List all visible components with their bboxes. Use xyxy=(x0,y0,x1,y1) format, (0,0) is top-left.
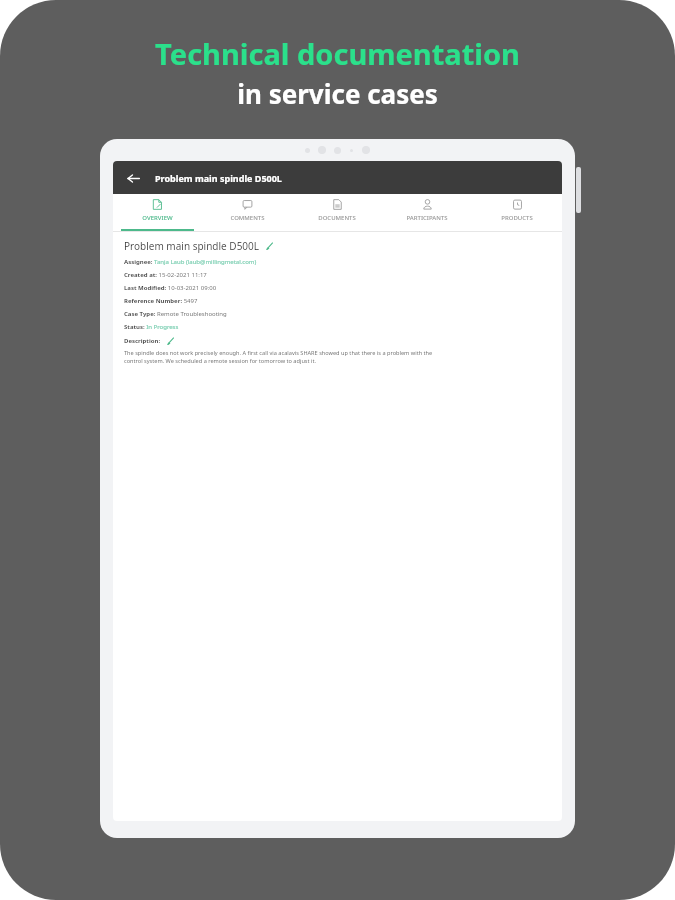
staticText: Status: In Progress xyxy=(124,323,179,331)
staticText: Reference Number: 5497 xyxy=(124,297,198,305)
staticText: Problem main spindle D500L xyxy=(124,239,260,253)
staticText: COMMENTS xyxy=(230,214,265,222)
button[interactable]: DOCUMENTS xyxy=(292,194,382,231)
staticText: Problem main spindle D500L xyxy=(155,172,282,184)
staticText: Case Type: Remote Troubleshooting xyxy=(124,310,227,318)
staticText: in service cases xyxy=(237,76,438,111)
staticText: The spindle does not work precisely enou… xyxy=(124,349,444,365)
staticText: PRODUCTS xyxy=(501,214,533,222)
staticText: DOCUMENTS xyxy=(318,214,356,222)
staticText: OVERVIEW xyxy=(142,214,173,222)
button[interactable]: OVERVIEW xyxy=(113,194,202,231)
staticText: Description: xyxy=(124,337,161,345)
staticText: Technical documentation xyxy=(155,34,520,73)
button[interactable]: Edit title xyxy=(265,241,275,251)
button[interactable]: PRODUCTS xyxy=(472,194,562,231)
staticText: Assignee: Tanja Laub (laub@millingmetal.… xyxy=(124,258,257,266)
button[interactable]: Edit description xyxy=(166,336,176,346)
staticText: Last Modified: 10-03-2021 09:00 xyxy=(124,284,217,292)
button[interactable]: Back xyxy=(122,167,144,189)
button[interactable]: PARTICIPANTS xyxy=(382,194,472,231)
button[interactable]: COMMENTS xyxy=(202,194,292,231)
staticText: Created at: 15-02-2021 11:17 xyxy=(124,271,207,279)
staticText: PARTICIPANTS xyxy=(406,214,448,222)
